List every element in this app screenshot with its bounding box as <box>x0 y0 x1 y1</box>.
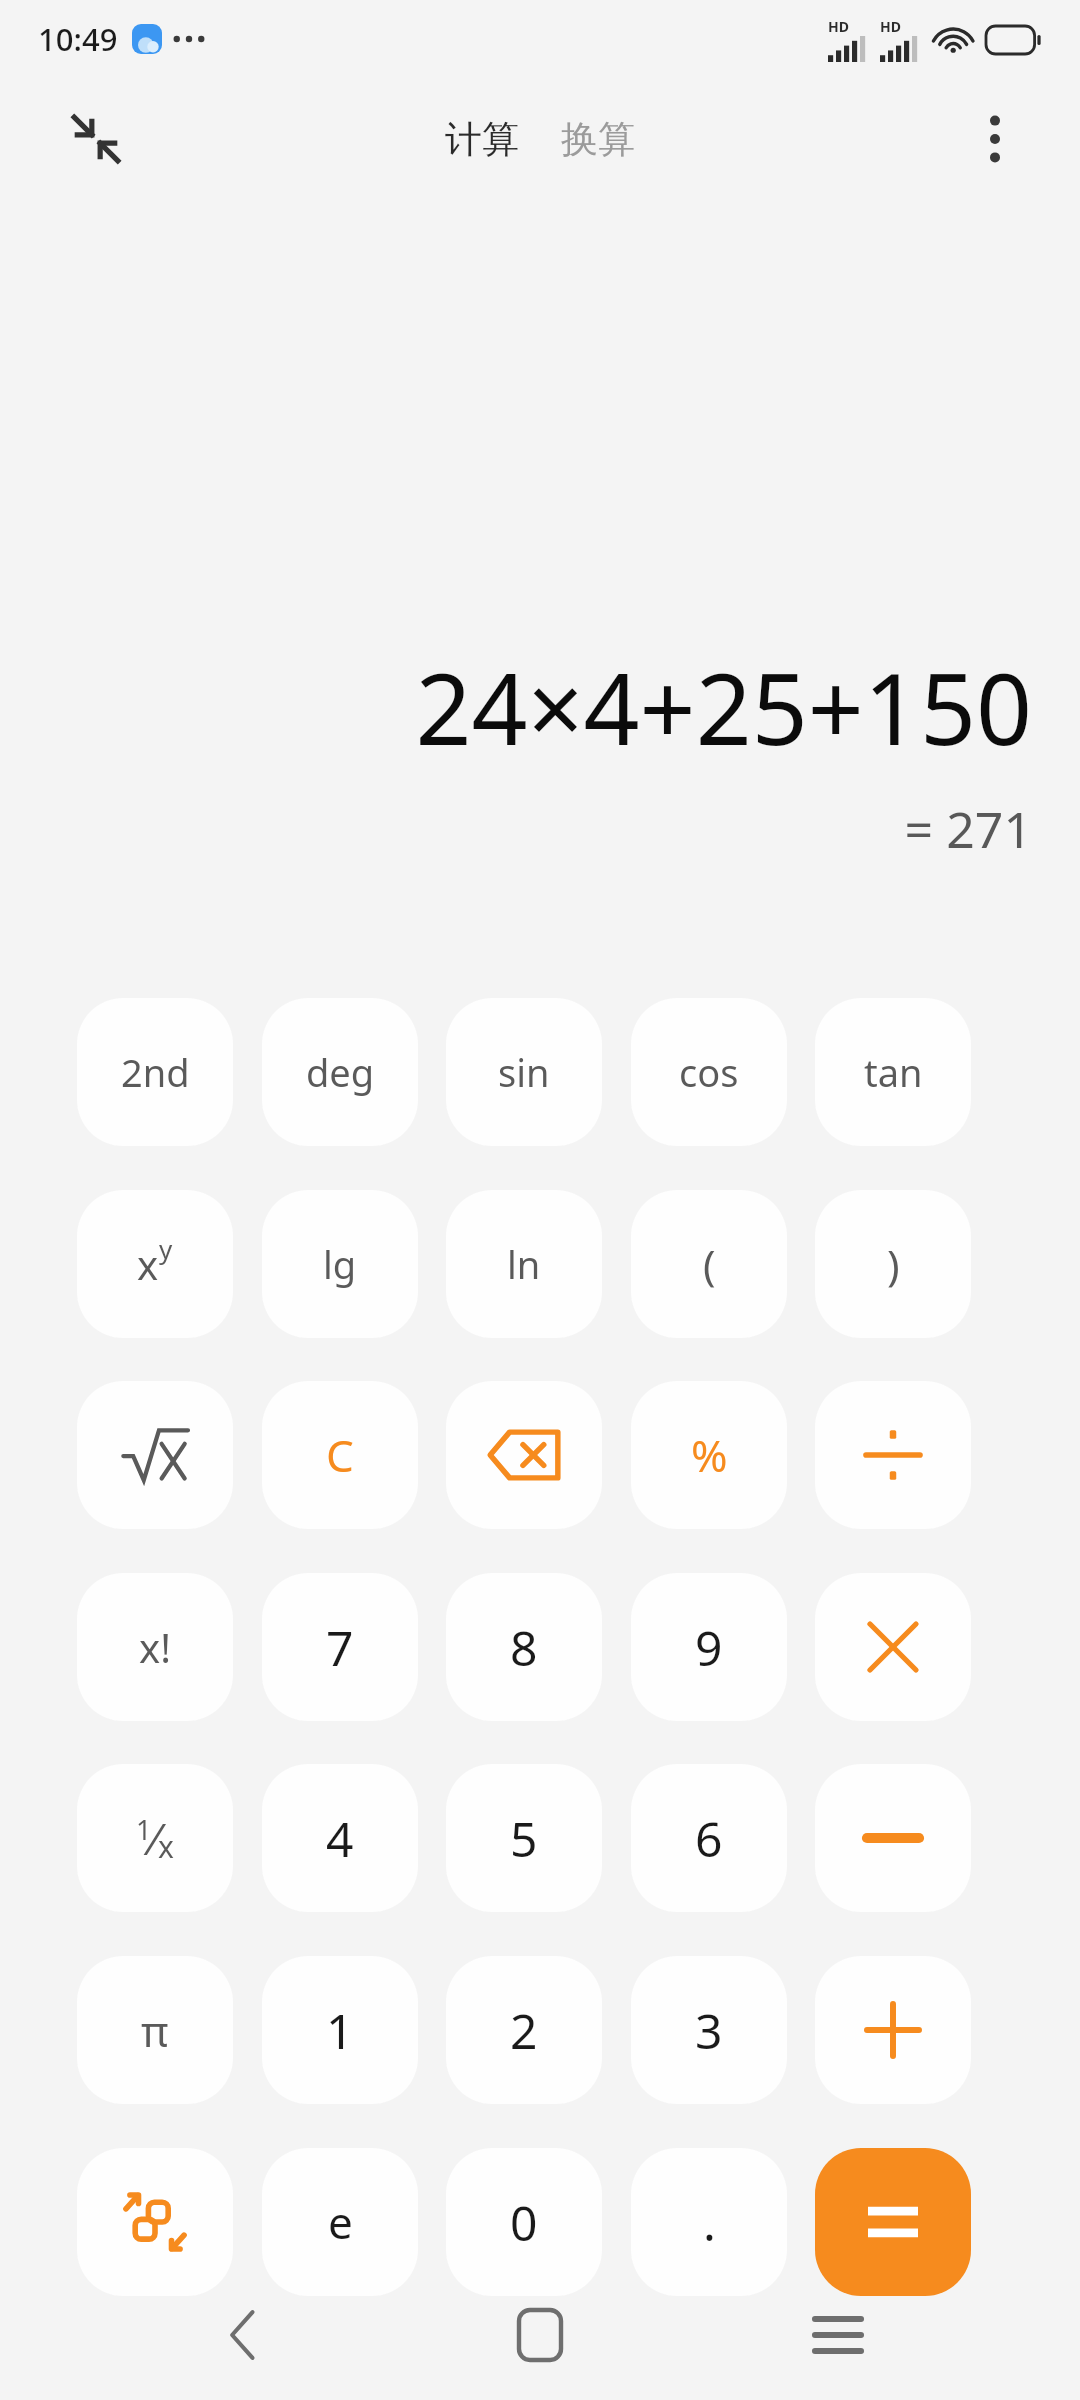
button[interactable]: 6 <box>631 1764 787 1912</box>
button[interactable]: More options <box>962 106 1028 172</box>
button[interactable]: deg <box>262 998 418 1146</box>
button[interactable]: Plus <box>815 1956 971 2104</box>
button[interactable]: Minus <box>815 1764 971 1912</box>
button[interactable]: 2nd <box>77 998 233 1146</box>
staticText: e <box>328 2192 353 2252</box>
staticText: 5 <box>510 1806 538 1871</box>
staticText: 1 <box>326 1998 354 2063</box>
staticText: x <box>158 1826 174 1867</box>
staticText: 4 <box>326 1806 354 1871</box>
staticText: % <box>691 1425 728 1485</box>
button[interactable]: tan <box>815 998 971 1146</box>
button[interactable]: x to the power of y <box>77 1190 233 1338</box>
staticText: tan <box>864 1046 923 1098</box>
staticText: 换算 <box>561 116 635 163</box>
staticText: ln <box>507 1238 541 1290</box>
button[interactable]: Recent apps <box>783 2280 893 2390</box>
staticText: 0 <box>510 2190 538 2255</box>
staticText: π <box>141 2002 169 2059</box>
staticText: 2nd <box>121 1046 190 1098</box>
button[interactable]: π <box>77 1956 233 2104</box>
button[interactable]: 计算 <box>435 108 529 171</box>
button[interactable]: 4 <box>262 1764 418 1912</box>
staticText: 10:49 <box>38 18 118 60</box>
button[interactable]: C <box>262 1381 418 1529</box>
staticText: . <box>703 2190 716 2255</box>
button[interactable]: ln <box>446 1190 602 1338</box>
button[interactable]: Back <box>188 2280 298 2390</box>
staticText: 1 <box>136 1811 152 1848</box>
button[interactable]: 2 <box>446 1956 602 2104</box>
staticText: 24×4+25+150 <box>415 640 1032 773</box>
button[interactable]: 0 <box>446 2148 602 2296</box>
staticText: sin <box>498 1046 550 1098</box>
staticText: cos <box>679 1046 739 1098</box>
staticText: ) <box>887 1236 900 1293</box>
button[interactable]: Equals <box>815 2148 971 2296</box>
button[interactable]: Square root <box>77 1381 233 1529</box>
button[interactable]: 换算 <box>551 108 645 171</box>
staticText: ( <box>703 1236 716 1293</box>
staticText: 7 <box>326 1615 354 1680</box>
button[interactable]: Collapse <box>60 103 132 175</box>
staticText: 8 <box>510 1615 538 1680</box>
button[interactable]: x! <box>77 1573 233 1721</box>
staticText: 2 <box>510 1998 538 2063</box>
button[interactable]: Delete <box>446 1381 602 1529</box>
staticText: x! <box>139 1620 171 1674</box>
staticText: HD <box>828 17 849 36</box>
button[interactable]: Multiply <box>815 1573 971 1721</box>
button[interactable]: lg <box>262 1190 418 1338</box>
staticText: 计算 <box>445 116 519 163</box>
button[interactable]: 5 <box>446 1764 602 1912</box>
staticText: x <box>137 1237 159 1291</box>
button[interactable]: 7 <box>262 1573 418 1721</box>
staticText: 9 <box>695 1615 723 1680</box>
staticText: HD <box>880 17 901 36</box>
button[interactable]: 1 <box>262 1956 418 2104</box>
staticText: y <box>159 1231 173 1266</box>
staticText: C <box>326 1425 354 1485</box>
staticText: ⁄ <box>152 1808 158 1868</box>
button[interactable]: 9 <box>631 1573 787 1721</box>
staticText: 6 <box>695 1806 723 1871</box>
button[interactable]: ) <box>815 1190 971 1338</box>
button[interactable]: cos <box>631 998 787 1146</box>
staticText: lg <box>323 1238 357 1290</box>
button[interactable]: 3 <box>631 1956 787 2104</box>
button[interactable]: ( <box>631 1190 787 1338</box>
staticText: = 271 <box>904 795 1032 863</box>
button[interactable]: e <box>262 2148 418 2296</box>
button[interactable]: . <box>631 2148 787 2296</box>
button[interactable]: Divide <box>815 1381 971 1529</box>
button[interactable]: Home <box>485 2280 595 2390</box>
button[interactable]: Switch mode <box>77 2148 233 2296</box>
staticText: 3 <box>695 1998 723 2063</box>
button[interactable]: sin <box>446 998 602 1146</box>
staticText: deg <box>306 1046 375 1098</box>
button[interactable]: 8 <box>446 1573 602 1721</box>
button[interactable]: % <box>631 1381 787 1529</box>
button[interactable]: One over x <box>77 1764 233 1912</box>
